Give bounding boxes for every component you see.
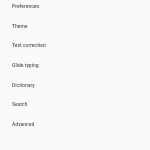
staticText: Search [12, 101, 28, 107]
button[interactable]: Text correction [0, 35, 150, 55]
staticText: Dictionary [12, 82, 35, 88]
staticText: Text correction [12, 42, 46, 48]
button[interactable]: Advanced [0, 114, 150, 134]
button[interactable]: Glide typing [0, 55, 150, 75]
staticText: Advanced [12, 121, 35, 127]
staticText: Theme [12, 23, 28, 29]
staticText: Glide typing [12, 62, 39, 68]
button[interactable]: Dictionary [0, 75, 150, 95]
staticText: Preferences [12, 3, 40, 9]
button[interactable]: Preferences [0, 0, 150, 16]
button[interactable]: Search [0, 94, 150, 114]
button[interactable]: Theme [0, 16, 150, 36]
